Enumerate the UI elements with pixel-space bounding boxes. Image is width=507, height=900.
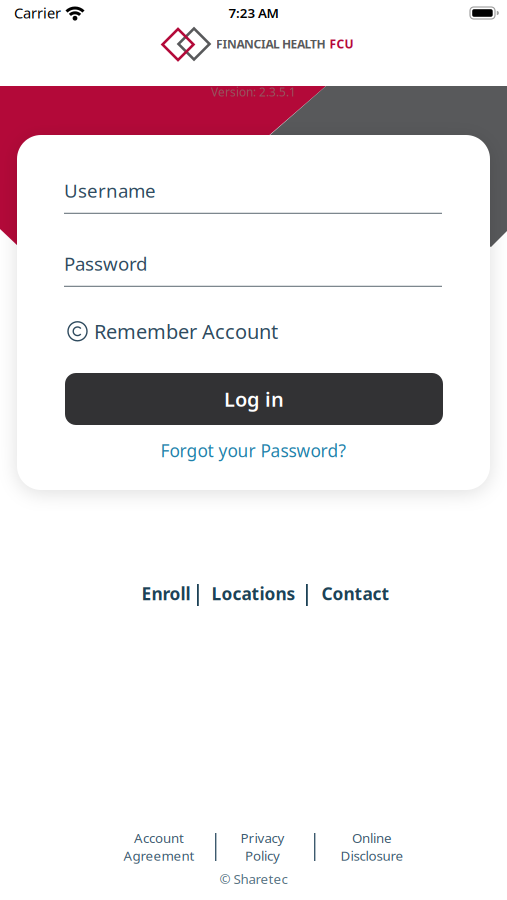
staticText: Log in [224, 386, 284, 412]
staticText: Privacy [240, 829, 284, 847]
staticText: Online [352, 829, 392, 847]
button[interactable]: Account [104, 829, 214, 864]
button[interactable]: Online [317, 829, 427, 864]
staticText: Forgot your Password? [160, 439, 346, 462]
staticText: Agreement [123, 847, 194, 864]
staticText: Username [64, 178, 156, 203]
button[interactable]: Username [64, 178, 442, 214]
staticText: Policy [245, 847, 280, 864]
staticText: Password [64, 251, 147, 276]
staticText: Carrier [14, 3, 61, 22]
button[interactable]: Forgot your Password? [160, 439, 346, 462]
button[interactable]: Contact [310, 582, 400, 605]
staticText: Remember Account [94, 318, 278, 345]
button[interactable]: Locations [203, 582, 303, 605]
button[interactable]: Log in [65, 373, 443, 425]
staticText: Version: 2.3.5.1 [211, 84, 296, 100]
staticText: 7:23 AM [228, 4, 279, 22]
staticText: FINANCIAL HEALTH [216, 36, 325, 52]
button[interactable]: Privacy [212, 829, 312, 864]
staticText: Account [134, 829, 184, 847]
staticText: Contact [321, 582, 389, 605]
button[interactable]: Enroll [126, 582, 206, 605]
staticText: FCU [329, 36, 353, 52]
staticText: Enroll [141, 582, 190, 605]
staticText: Disclosure [340, 847, 403, 864]
staticText: Locations [211, 582, 295, 605]
button[interactable]: Remember Account [68, 318, 278, 345]
button[interactable]: Password [64, 251, 442, 287]
staticText: © Sharetec [219, 870, 287, 888]
